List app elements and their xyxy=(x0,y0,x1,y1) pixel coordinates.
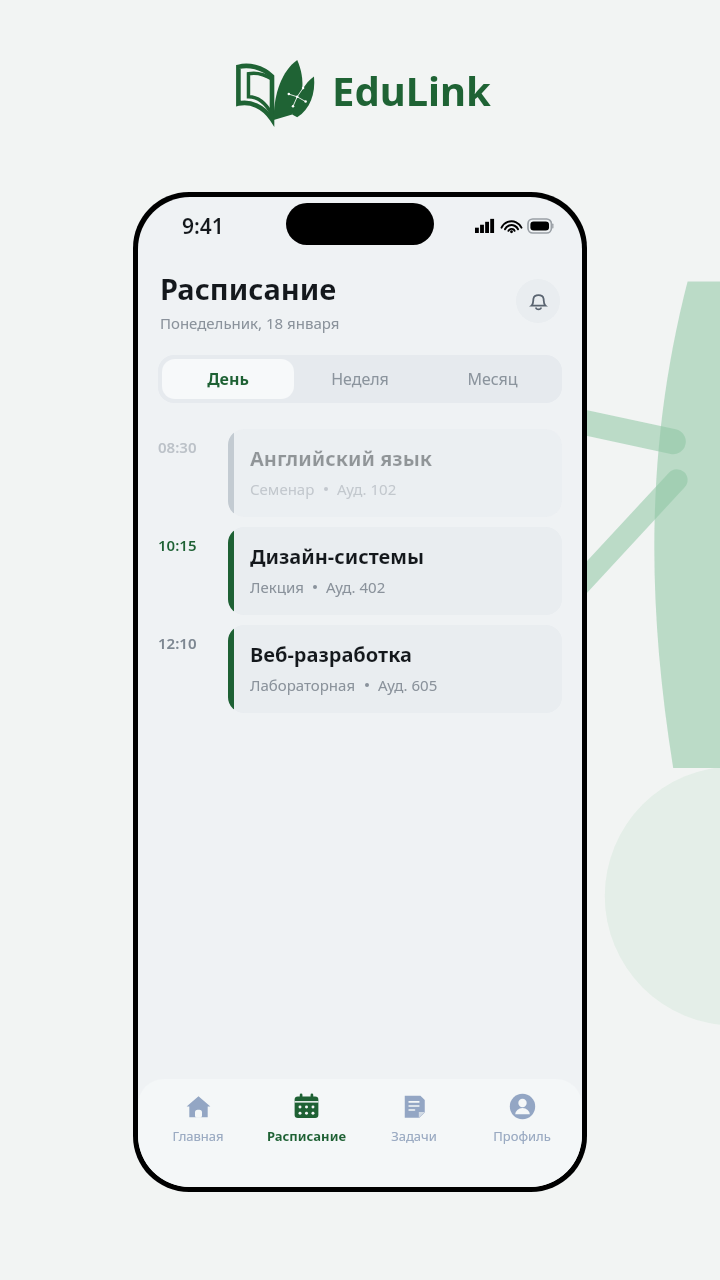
button[interactable]: Главная xyxy=(150,1093,246,1145)
staticText: Ауд. 605 xyxy=(378,675,438,695)
staticText: Лекция xyxy=(250,577,304,597)
staticText: Расписание xyxy=(267,1127,346,1145)
staticText: Английский язык xyxy=(250,445,433,472)
staticText: 9:41 xyxy=(182,212,224,241)
button[interactable]: Расписание xyxy=(258,1093,354,1145)
staticText: Понедельник, 18 января xyxy=(160,313,340,333)
button[interactable]: Профиль xyxy=(474,1093,570,1145)
button[interactable]: Уведомления xyxy=(516,279,560,323)
staticText: 08:30 xyxy=(158,437,220,457)
button[interactable]: 08:30 xyxy=(158,429,562,517)
staticText: Ауд. 402 xyxy=(326,577,386,597)
staticText: Главная xyxy=(172,1127,224,1145)
staticText: Профиль xyxy=(493,1127,551,1145)
button[interactable]: 12:10 xyxy=(158,625,562,713)
staticText: 12:10 xyxy=(158,633,220,653)
staticText: Лабораторная xyxy=(250,675,356,695)
staticText: Семенар xyxy=(250,479,315,499)
button[interactable]: Месяц xyxy=(426,359,558,399)
staticText: День xyxy=(207,368,249,390)
staticText: EduLink xyxy=(332,63,491,117)
staticText: Расписание xyxy=(160,269,337,308)
staticText: Веб-разработка xyxy=(250,641,412,668)
staticText: Ауд. 102 xyxy=(337,479,397,499)
staticText: Задачи xyxy=(391,1127,437,1145)
button[interactable]: Неделя xyxy=(294,359,426,399)
staticText: Месяц xyxy=(467,368,518,390)
button[interactable]: День xyxy=(162,359,294,399)
button[interactable]: Задачи xyxy=(366,1093,462,1145)
staticText: Неделя xyxy=(331,368,389,390)
button[interactable]: 10:15 xyxy=(158,527,562,615)
staticText: 10:15 xyxy=(158,535,220,555)
staticText: Дизайн-системы xyxy=(250,543,425,570)
